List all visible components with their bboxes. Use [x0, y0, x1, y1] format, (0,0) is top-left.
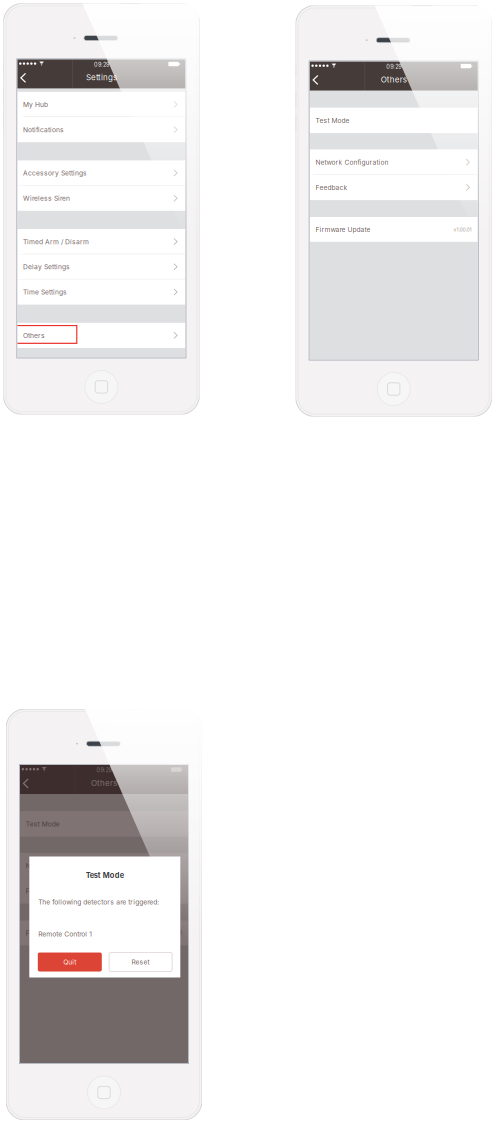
staticText: Firmware Update	[26, 929, 81, 937]
button[interactable]: Firmware Update	[310, 217, 478, 242]
button[interactable]: Back	[17, 70, 35, 87]
button[interactable]: Feedback	[310, 175, 478, 200]
staticText: Accessory Settings	[23, 169, 87, 177]
button[interactable]: Time Settings	[17, 279, 185, 305]
staticText: v1.00.01	[164, 930, 182, 936]
staticText: Network Configuration	[315, 158, 388, 166]
staticText: Time Settings	[23, 288, 67, 296]
staticText: Others	[381, 75, 407, 84]
staticText: v1.00.01	[453, 226, 471, 233]
button[interactable]: Network Configuration	[20, 853, 188, 878]
button[interactable]: Reset	[109, 952, 172, 971]
button[interactable]: Back	[310, 72, 328, 89]
staticText: Others	[91, 778, 117, 788]
staticText: 09:29	[94, 61, 109, 68]
button[interactable]: Test Mode	[310, 108, 478, 133]
button[interactable]: Delay Settings	[17, 254, 185, 279]
staticText: 09:29	[96, 767, 111, 774]
button[interactable]: Test Mode	[20, 811, 188, 837]
button[interactable]: Feedback	[20, 878, 188, 904]
staticText: Others	[23, 331, 45, 340]
staticText: Test Mode	[315, 116, 349, 125]
button[interactable]: My Hub	[17, 92, 185, 117]
button[interactable]: Firmware Update	[20, 920, 188, 945]
staticText: Test Mode	[86, 871, 124, 880]
button[interactable]: Accessory Settings	[17, 160, 185, 186]
staticText: Feedback	[315, 184, 347, 192]
staticText: Network Configuration	[26, 862, 99, 870]
staticText: Timed Arm / Disarm	[23, 238, 89, 246]
staticText: Remote Control 1	[38, 930, 92, 938]
button[interactable]: Wireless Siren	[17, 186, 185, 211]
button[interactable]: Timed Arm / Disarm	[17, 229, 185, 254]
staticText: Reset	[132, 958, 150, 966]
staticText: Feedback	[26, 887, 58, 895]
staticText: The following detectors are triggered:	[38, 898, 159, 906]
staticText: Quit	[63, 958, 76, 966]
staticText: Notifications	[23, 126, 64, 134]
button[interactable]: Back	[20, 776, 38, 793]
staticText: My Hub	[23, 100, 48, 109]
staticText: 09:29	[386, 63, 401, 70]
staticText: Wireless Siren	[23, 194, 70, 202]
button[interactable]: Others	[17, 323, 185, 348]
button[interactable]: Network Configuration	[310, 149, 478, 175]
staticText: Delay Settings	[23, 263, 70, 271]
button[interactable]: Quit	[38, 952, 102, 971]
staticText: Firmware Update	[315, 225, 370, 234]
staticText: Settings	[86, 73, 117, 82]
staticText: Test Mode	[26, 820, 60, 828]
button[interactable]: Notifications	[17, 117, 185, 142]
